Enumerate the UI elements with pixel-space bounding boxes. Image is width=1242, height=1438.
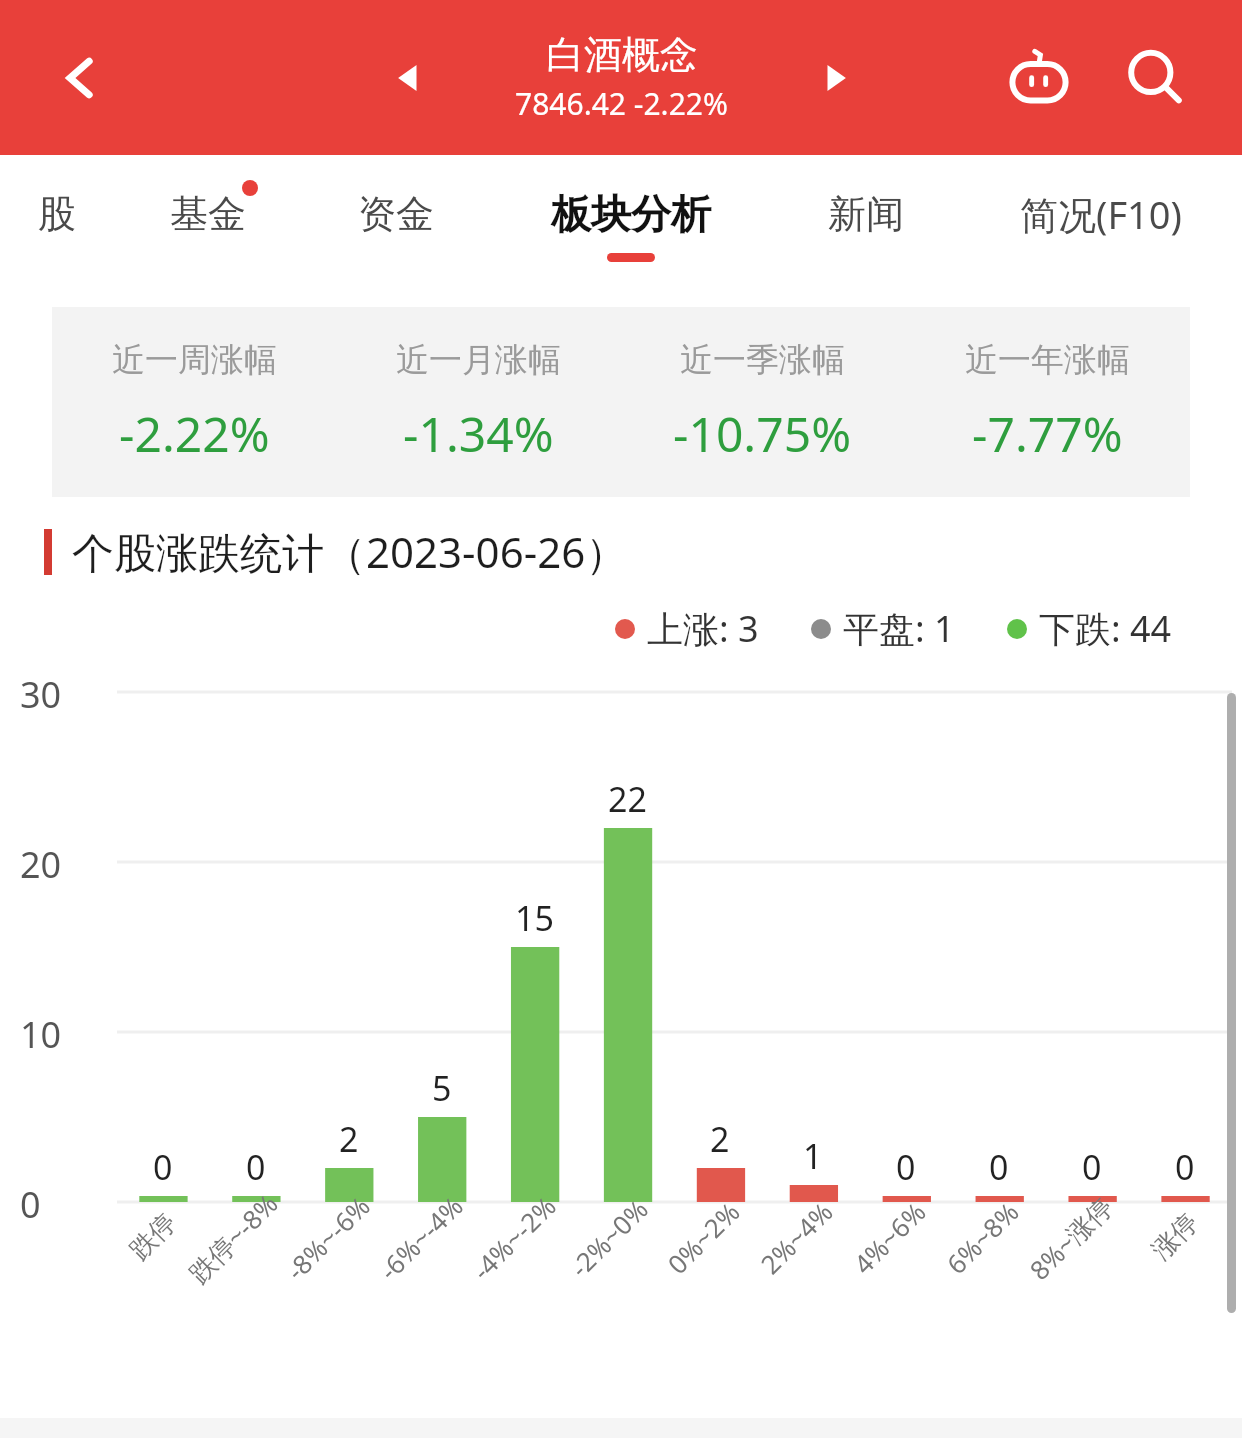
staticText: -10.75% xyxy=(673,401,852,466)
button[interactable]: 近一季涨幅 xyxy=(620,339,905,466)
staticText: 0 xyxy=(896,1144,916,1190)
staticText: 2%~4% xyxy=(752,1194,839,1281)
staticText: 20 xyxy=(20,840,62,889)
button[interactable]: Previous xyxy=(388,55,434,101)
staticText: 2 xyxy=(339,1116,359,1162)
button[interactable]: Back xyxy=(52,48,112,108)
staticText: 下跌: 44 xyxy=(1039,604,1172,653)
staticText: 基金 xyxy=(170,190,246,238)
staticText: 15 xyxy=(515,895,554,941)
button[interactable]: 简况(F10) xyxy=(960,155,1242,295)
staticText: 22 xyxy=(608,776,647,822)
staticText: 0 xyxy=(1082,1144,1102,1190)
staticText: 0 xyxy=(20,1180,41,1229)
staticText: 1 xyxy=(803,1133,823,1179)
staticText: 0 xyxy=(1175,1144,1195,1190)
staticText: 7846.42 -2.22% xyxy=(515,83,728,124)
button[interactable]: 近一年涨幅 xyxy=(905,339,1190,466)
staticText: 近一年涨幅 xyxy=(965,339,1130,381)
button[interactable]: 股 xyxy=(0,155,114,295)
staticText: -8%~-6% xyxy=(278,1188,377,1287)
staticText: -2%~0% xyxy=(562,1191,655,1284)
button[interactable]: 近一周涨幅 xyxy=(52,339,336,466)
button[interactable]: 下跌: 44 xyxy=(1007,604,1172,653)
staticText: 0 xyxy=(246,1144,266,1190)
staticText: 板块分析 xyxy=(551,189,711,239)
button[interactable]: 上涨: 3 xyxy=(615,604,759,653)
staticText: 0 xyxy=(989,1144,1009,1190)
staticText: 上涨: 3 xyxy=(647,604,759,653)
button[interactable]: 资金 xyxy=(302,155,490,295)
staticText: 8%~涨停 xyxy=(1021,1188,1120,1287)
staticText: -1.34% xyxy=(403,401,554,466)
staticText: 股 xyxy=(38,190,76,238)
button[interactable]: 近一月涨幅 xyxy=(336,339,620,466)
staticText: 6%~8% xyxy=(938,1194,1025,1281)
staticText: 资金 xyxy=(358,190,434,238)
button[interactable]: Next xyxy=(810,55,856,101)
staticText: 个股涨跌统计（2023-06-26） xyxy=(72,523,628,580)
staticText: 近一月涨幅 xyxy=(396,339,561,381)
button[interactable]: 平盘: 1 xyxy=(811,604,955,653)
staticText: 5 xyxy=(432,1065,452,1111)
staticText: 白酒概念 xyxy=(546,31,698,79)
staticText: 近一周涨幅 xyxy=(112,339,277,381)
button[interactable]: 新闻 xyxy=(772,155,960,295)
staticText: -4%~-2% xyxy=(464,1188,563,1287)
button[interactable]: 基金 xyxy=(114,155,302,295)
staticText: -6%~-4% xyxy=(371,1188,470,1287)
staticText: 平盘: 1 xyxy=(843,604,955,653)
staticText: 简况(F10) xyxy=(1020,188,1182,240)
staticText: 30 xyxy=(20,670,62,719)
button[interactable]: 板块分析 xyxy=(490,155,772,295)
staticText: 涨停 xyxy=(1145,1206,1205,1266)
staticText: -7.77% xyxy=(972,401,1123,466)
staticText: 0 xyxy=(153,1144,173,1190)
staticText: 4%~6% xyxy=(845,1194,932,1281)
staticText: 近一季涨幅 xyxy=(680,339,845,381)
button[interactable]: Search xyxy=(1120,43,1190,113)
staticText: 跌停 xyxy=(123,1206,183,1266)
staticText: -2.22% xyxy=(119,401,270,466)
staticText: 2 xyxy=(710,1116,730,1162)
staticText: 新闻 xyxy=(828,190,904,238)
staticText: 10 xyxy=(20,1010,62,1059)
staticText: 0%~2% xyxy=(659,1194,746,1281)
button[interactable]: Assistant xyxy=(1004,43,1074,113)
staticText: 跌停~-8% xyxy=(181,1186,285,1290)
